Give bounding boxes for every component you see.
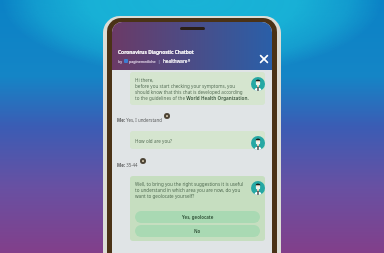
staticText: Hi there, before you start checking your… — [135, 77, 249, 101]
staticText: Me: 35-44 — [117, 162, 138, 168]
staticText: How old are you? — [135, 138, 173, 144]
staticText: paginemediche — [129, 59, 156, 64]
staticText: healthware — [163, 58, 188, 64]
button[interactable]: No — [135, 225, 260, 237]
button[interactable]: Yes, geolocate — [135, 211, 260, 223]
staticText: | — [158, 59, 161, 64]
staticText: Me: Yes, I understand — [117, 117, 162, 123]
staticText: Well, to bring you the right suggestions… — [135, 181, 244, 199]
staticText: Yes, geolocate — [182, 214, 214, 220]
staticText: No — [194, 228, 201, 234]
staticText: Coronavirus Diagnostic Chatbot — [118, 49, 194, 56]
staticText: by — [118, 59, 122, 64]
button[interactable]: Close — [257, 52, 271, 66]
staticText: ® — [188, 59, 191, 63]
